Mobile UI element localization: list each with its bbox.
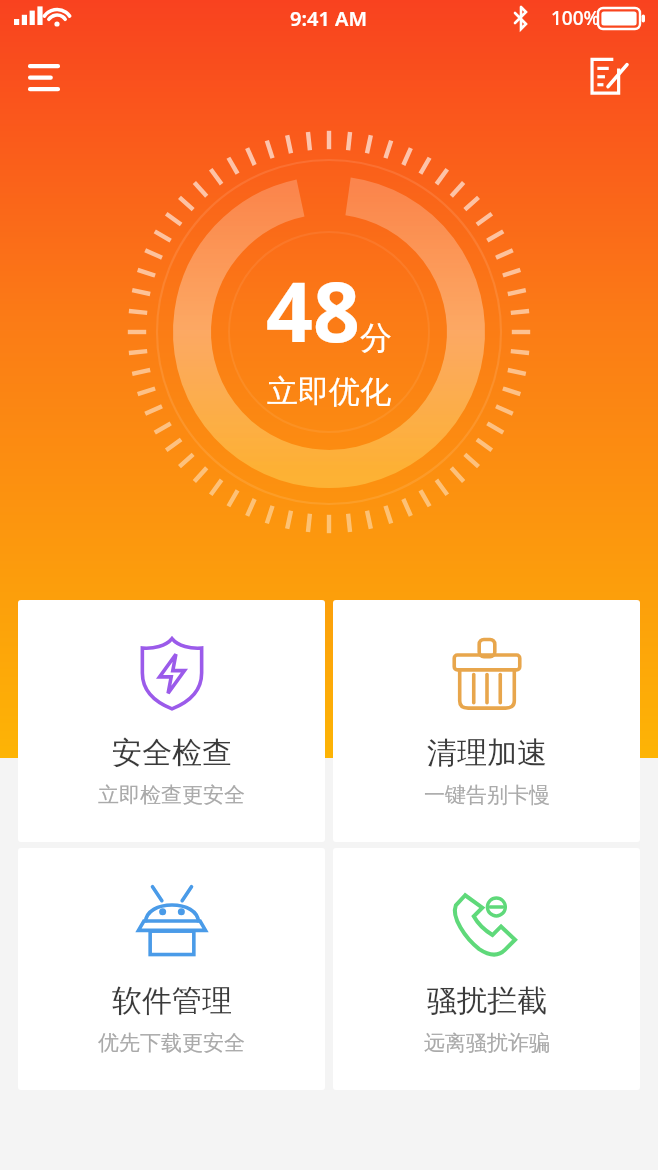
button[interactable]: 48 (0, 122, 658, 542)
staticText: 48 (266, 254, 360, 366)
button[interactable]: 软件管理 (18, 848, 325, 1090)
staticText: 9:41 AM (290, 5, 368, 32)
button[interactable]: 安全检查 (18, 600, 325, 842)
button[interactable]: 清理加速 (333, 600, 640, 842)
staticText: 清理加速 (427, 734, 547, 772)
staticText: 100% (551, 5, 600, 31)
staticText: 远离骚扰诈骗 (424, 1030, 550, 1056)
button[interactable]: Edit (580, 48, 636, 104)
staticText: 软件管理 (112, 982, 232, 1020)
staticText: 骚扰拦截 (427, 982, 547, 1020)
staticText: 立即优化 (267, 372, 391, 411)
staticText: 安全检查 (112, 734, 232, 772)
button[interactable]: 骚扰拦截 (333, 848, 640, 1090)
staticText: 优先下载更安全 (98, 1030, 245, 1056)
staticText: 分 (360, 318, 392, 358)
button[interactable]: Menu (20, 48, 76, 104)
staticText: 立即检查更安全 (98, 782, 245, 808)
staticText: 一键告别卡慢 (424, 782, 550, 808)
